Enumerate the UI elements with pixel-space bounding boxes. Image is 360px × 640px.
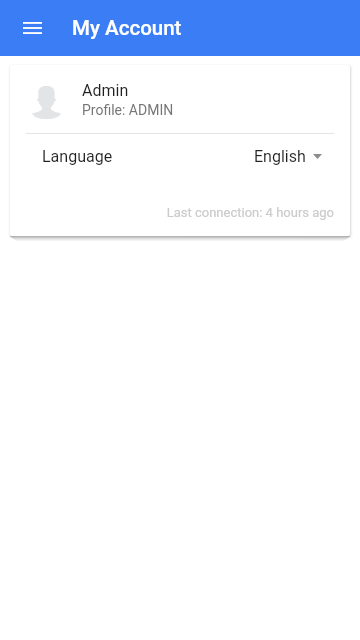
- staticText: Profile: ADMIN: [82, 102, 174, 118]
- staticText: Last connection: 4 hours ago: [10, 205, 334, 220]
- button[interactable]: Open navigation drawer: [8, 4, 56, 52]
- button[interactable]: Admin: [10, 65, 350, 133]
- staticText: English: [254, 147, 306, 166]
- button[interactable]: Language: [10, 133, 350, 179]
- staticText: Admin: [82, 81, 129, 100]
- staticText: My Account: [72, 16, 182, 40]
- staticText: Language: [42, 147, 113, 166]
